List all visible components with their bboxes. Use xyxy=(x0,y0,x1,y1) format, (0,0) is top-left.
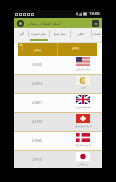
button[interactable]: 4.0012 xyxy=(14,75,102,93)
staticText: يورو xyxy=(81,86,86,89)
button[interactable]: Advertisement xyxy=(18,43,97,56)
staticText: أسعار العملات و معادن xyxy=(27,21,61,26)
staticText: سعر البيع xyxy=(54,32,66,36)
button[interactable]: Menu xyxy=(92,20,99,27)
button[interactable]: التغير xyxy=(70,28,91,39)
button[interactable]: أكثر xyxy=(14,28,28,39)
staticText: 4.6801 xyxy=(32,101,42,105)
staticText: 0.5580 xyxy=(32,139,42,143)
button[interactable]: 0.5580 xyxy=(14,132,102,150)
staticText: سعر الشراء xyxy=(31,32,47,36)
staticText: التغير xyxy=(77,32,84,36)
staticText: إعلان xyxy=(34,48,41,51)
button[interactable]: سعر البيع xyxy=(49,28,70,39)
staticText: دولار أمريكي xyxy=(76,67,90,71)
button[interactable]: 3.6750 xyxy=(14,56,102,74)
staticText: 3.6750 xyxy=(32,63,42,67)
button[interactable]: العملة xyxy=(91,28,103,39)
staticText: إعلان xyxy=(72,46,79,49)
staticText: 4.0012 xyxy=(32,82,42,86)
staticText: جنيه إسترليني xyxy=(76,105,91,109)
button[interactable]: 4.1230 xyxy=(14,113,102,131)
staticText: ad xyxy=(19,43,23,47)
staticText: 4.1230 xyxy=(32,120,42,124)
staticText: أكثر xyxy=(19,32,24,36)
staticText: فرنك سويسري xyxy=(75,124,92,128)
button[interactable]: 2.9110 xyxy=(14,151,102,168)
staticText: كرونة دنماركية xyxy=(75,143,91,147)
staticText: 2.9110 xyxy=(32,158,42,162)
staticText: 19:05 xyxy=(89,11,100,17)
button[interactable]: سعر الشراء xyxy=(28,28,49,39)
staticText: العملة xyxy=(93,32,101,36)
button[interactable]: 4.6801 xyxy=(14,94,102,112)
button[interactable]: App logo xyxy=(17,20,24,27)
staticText: ين ياباني xyxy=(78,162,88,166)
